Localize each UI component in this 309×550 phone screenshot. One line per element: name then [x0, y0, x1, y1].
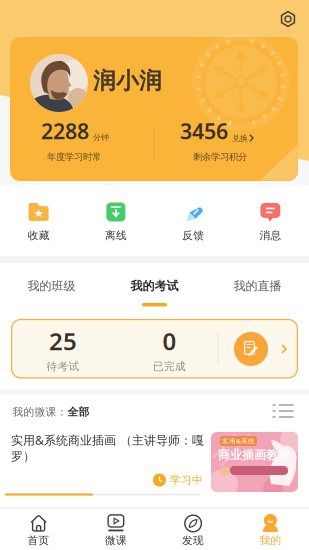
button[interactable]: 3456	[180, 117, 254, 145]
button[interactable]: 我的直播	[206, 266, 309, 306]
staticText: 已完成	[153, 360, 186, 373]
staticText: 首页	[28, 534, 50, 547]
button[interactable]: 首页	[0, 510, 77, 550]
staticText: 我的直播	[233, 279, 281, 293]
staticText: 待考试	[46, 360, 79, 373]
staticText: 收藏	[28, 229, 50, 242]
staticText: 0	[162, 325, 176, 357]
staticText: 3456	[180, 117, 228, 145]
staticText: 我的考试	[130, 279, 178, 293]
button[interactable]: 微课	[77, 510, 154, 550]
staticText: 剩余学习积分	[193, 151, 247, 163]
staticText: 润小润	[93, 67, 162, 95]
staticText: 微课	[105, 534, 127, 547]
staticText: 实用&系统商业插画 （主讲导师：嘎	[11, 432, 204, 448]
button[interactable]: 设置	[276, 7, 300, 31]
button[interactable]: 反馈	[154, 190, 232, 254]
staticText: 我的	[259, 534, 281, 547]
staticText: 我的微课：	[12, 405, 67, 418]
staticText: 我的班级	[27, 279, 75, 293]
button[interactable]: 25	[11, 319, 298, 378]
staticText: 全部	[67, 405, 89, 418]
button[interactable]: 实用&系统商业插画 （主讲导师：嘎	[0, 428, 309, 496]
staticText: 实用&系统	[222, 437, 255, 445]
staticText: 学习中	[170, 473, 203, 486]
button[interactable]: 消息	[232, 190, 309, 254]
staticText: 消息	[259, 229, 281, 242]
staticText: 25	[49, 325, 77, 357]
staticText: 发现	[182, 534, 204, 547]
staticText: 年度学习时常	[47, 151, 101, 163]
button[interactable]: 离线	[77, 190, 154, 254]
staticText: 2288	[41, 117, 89, 145]
button[interactable]: 我的考试	[103, 266, 206, 306]
button[interactable]: 我的	[232, 510, 309, 550]
button[interactable]: 收藏	[0, 190, 77, 254]
staticText: 反馈	[182, 229, 204, 242]
button[interactable]: 我的班级	[0, 266, 103, 306]
staticText: 商业插画教程	[218, 448, 290, 462]
button[interactable]: 列表排序	[272, 404, 293, 418]
staticText: 兑换	[232, 133, 248, 143]
staticText: 罗）	[11, 449, 35, 464]
staticText: 分钟	[93, 132, 109, 142]
button[interactable]: 发现	[155, 510, 232, 550]
staticText: 离线	[105, 229, 127, 242]
